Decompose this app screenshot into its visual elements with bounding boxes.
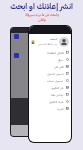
other: Badge [31,40,35,44]
button[interactable]: تسجيل حساب [29,77,71,84]
button[interactable]: اعلن الان [29,63,71,70]
staticText: وأمان [38,17,46,22]
button[interactable]: بحثي [29,56,71,63]
button[interactable]: عن التطبيق [29,84,71,91]
button[interactable]: اعلاناتي المفضلة [29,49,71,56]
staticText: انشر إعلانك او ابحث [10,0,73,12]
staticText: محمد [50,37,58,42]
button[interactable]: شارك التطبيق [29,98,71,105]
staticText: تسجيل حساب [47,79,64,83]
staticText: شارك التطبيق [49,100,64,104]
staticText: اعلن الان [54,65,64,69]
staticText: بحثي [58,58,64,62]
staticText: عرض الملف الشخصي [38,42,58,46]
button[interactable]: Badge [29,34,71,49]
staticText: تواصل معنا [51,93,64,97]
staticText: اعلاناتي المفضلة [47,51,64,55]
staticText: عن التطبيق [51,86,64,90]
staticText: المزيد [57,107,64,111]
button[interactable]: تسجيل الدخول [29,70,71,77]
button[interactable]: المزيد [29,105,71,112]
staticText: تسجيل الدخول [47,72,64,76]
button[interactable]: تواصل معنا [29,91,71,98]
staticText: وابحث عن ما تريد بسهولة [25,12,59,17]
